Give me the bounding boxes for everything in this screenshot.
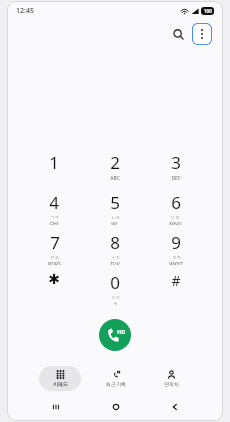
staticText: 최근기록: [106, 381, 126, 387]
staticText: 100: [204, 8, 212, 14]
button[interactable]: 1: [24, 151, 84, 185]
staticText: ㅂㅍ: [50, 255, 59, 261]
staticText: ㅈㅊ: [172, 255, 181, 261]
staticText: 6: [171, 191, 181, 214]
button[interactable]: Search: [167, 23, 189, 45]
staticText: 2: [110, 151, 120, 174]
staticText: ㅇㅁ: [111, 295, 120, 301]
staticText: 9: [171, 231, 181, 254]
button[interactable]: 최근기록: [95, 366, 137, 391]
button[interactable]: ✱: [24, 271, 84, 305]
staticText: ㅅㅎ: [111, 255, 120, 261]
button[interactable]: Recents: [26, 397, 86, 417]
staticText: #: [171, 271, 181, 290]
button[interactable]: 2: [84, 151, 145, 185]
staticText: DEF: [171, 175, 181, 182]
button[interactable]: 0: [84, 271, 145, 305]
staticText: 4: [49, 191, 59, 214]
staticText: PQRS: [48, 261, 61, 265]
staticText: 5: [110, 191, 120, 214]
staticText: 3: [171, 151, 181, 174]
staticText: 키패드: [53, 381, 68, 387]
button[interactable]: 8: [84, 231, 145, 265]
button[interactable]: Call: [99, 319, 131, 351]
button[interactable]: 3: [145, 151, 206, 185]
button[interactable]: 6: [145, 191, 206, 225]
staticText: 7: [50, 231, 60, 254]
staticText: ✱: [48, 271, 60, 287]
staticText: 연락처: [164, 381, 179, 387]
button[interactable]: 키패드: [39, 366, 81, 391]
button[interactable]: #: [145, 271, 206, 305]
staticText: GHI: [49, 221, 59, 225]
staticText: ABC: [110, 175, 120, 182]
button[interactable]: 5: [84, 191, 145, 225]
staticText: ㄱㅋ: [50, 215, 59, 221]
button[interactable]: More options: [192, 23, 212, 45]
staticText: ㄷㅌ: [171, 215, 180, 221]
staticText: 8: [110, 231, 120, 254]
staticText: HD: [117, 328, 126, 335]
button[interactable]: Home: [86, 397, 145, 417]
staticText: TUV: [110, 261, 120, 265]
staticText: ㄴㄹ: [111, 215, 120, 221]
staticText: 12:45: [16, 6, 34, 16]
staticText: MNO: [169, 221, 182, 225]
button[interactable]: Back: [145, 397, 204, 417]
button[interactable]: 연락처: [150, 366, 192, 391]
button[interactable]: 4: [24, 191, 84, 225]
staticText: 1: [49, 151, 59, 174]
button[interactable]: 7: [24, 231, 84, 265]
staticText: 0: [110, 271, 120, 294]
button[interactable]: 9: [145, 231, 206, 265]
staticText: JKL: [111, 221, 119, 225]
staticText: WXYZ: [169, 261, 183, 265]
staticText: +: [114, 301, 117, 305]
